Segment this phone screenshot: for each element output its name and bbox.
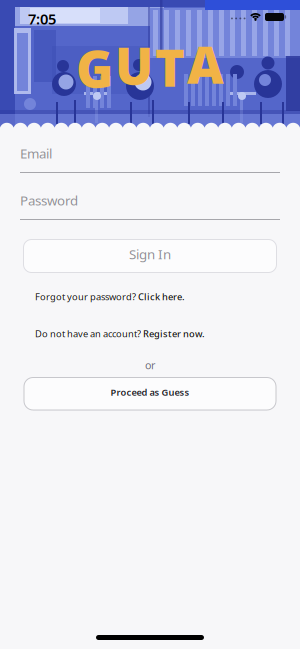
button[interactable]: Do not have an account? Register now. [35,327,205,340]
staticText: Email [20,144,52,162]
staticText: A [187,30,224,98]
button[interactable]: Password [20,191,280,221]
button[interactable]: Sign In [23,239,276,272]
staticText: T [155,33,185,101]
staticText: G [76,34,113,102]
staticText: Sign In [129,245,171,263]
staticText: Do not have an account? Register now. [35,327,205,340]
staticText: U [115,31,153,99]
button[interactable]: Forgot your password? Click here. [35,290,185,303]
staticText: Forgot your password? Click here. [35,290,185,303]
staticText: Proceed as Guess [110,386,189,398]
staticText: 7:05 [28,9,56,28]
button[interactable]: Proceed as Guess [24,377,276,410]
staticText: Password [20,191,78,209]
staticText: or [145,358,155,372]
button[interactable]: Email [20,144,280,174]
